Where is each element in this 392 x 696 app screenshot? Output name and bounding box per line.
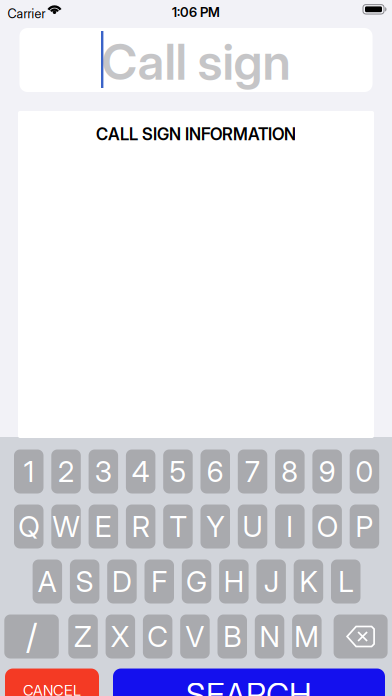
button[interactable]: R	[126, 504, 155, 548]
button[interactable]: U	[238, 504, 267, 548]
button[interactable]: T	[163, 504, 193, 548]
button[interactable]: M	[292, 614, 322, 658]
button[interactable]: 7	[238, 449, 267, 493]
staticText: J	[264, 564, 279, 599]
staticText: U	[243, 509, 263, 544]
staticText: P	[355, 509, 373, 544]
staticText: O	[317, 509, 338, 544]
button[interactable]: Y	[200, 504, 230, 548]
staticText: Y	[206, 509, 224, 544]
button[interactable]: J	[256, 559, 286, 603]
button[interactable]: CANCEL	[5, 668, 99, 696]
staticText: N	[260, 619, 280, 654]
button[interactable]: H	[219, 559, 249, 603]
staticText: G	[186, 564, 207, 599]
staticText: C	[147, 619, 168, 654]
button[interactable]: /	[4, 614, 59, 658]
staticText: 1:06 PM	[172, 4, 220, 20]
button[interactable]: V	[180, 614, 210, 658]
button[interactable]: 2	[51, 449, 81, 493]
staticText: V	[185, 619, 204, 654]
button[interactable]: I	[275, 504, 305, 548]
staticText: Z	[74, 619, 92, 654]
button[interactable]: 0	[350, 449, 379, 493]
button[interactable]: S	[70, 559, 99, 603]
button[interactable]: O	[312, 504, 342, 548]
staticText: H	[224, 564, 244, 599]
staticText: X	[111, 619, 130, 654]
staticText: I	[286, 509, 293, 544]
staticText: R	[132, 509, 150, 544]
staticText: 0	[355, 454, 373, 489]
button[interactable]: Q	[14, 504, 43, 548]
button[interactable]: 6	[200, 449, 230, 493]
staticText: 3	[95, 454, 112, 489]
button[interactable]: L	[331, 559, 360, 603]
button[interactable]: N	[255, 614, 284, 658]
button[interactable]: F	[144, 559, 174, 603]
staticText: M	[294, 619, 319, 654]
staticText: 7	[245, 454, 260, 489]
button[interactable]: 4	[126, 449, 155, 493]
staticText: 8	[281, 454, 298, 489]
staticText: L	[338, 564, 353, 599]
staticText: 5	[169, 454, 186, 489]
button[interactable]: 1	[14, 449, 43, 493]
staticText: K	[299, 564, 317, 599]
staticText: S	[76, 564, 94, 599]
staticText: CALL SIGN INFORMATION	[96, 124, 296, 144]
staticText: Q	[18, 509, 39, 544]
staticText: 4	[132, 454, 150, 489]
button[interactable]: X	[106, 614, 135, 658]
button[interactable]: K	[294, 559, 323, 603]
staticText: B	[223, 619, 241, 654]
button[interactable]: Delete	[334, 614, 388, 658]
staticText: SEARCH	[186, 675, 312, 696]
staticText: Carrier	[7, 6, 45, 21]
staticText: 6	[207, 454, 224, 489]
staticText: 2	[58, 454, 74, 489]
staticText: F	[151, 564, 167, 599]
staticText: D	[112, 564, 132, 599]
staticText: W	[52, 509, 79, 544]
button[interactable]: B	[217, 614, 247, 658]
button[interactable]: A	[33, 559, 62, 603]
staticText: E	[95, 509, 112, 544]
button[interactable]: C	[143, 614, 172, 658]
staticText: 1	[24, 454, 34, 489]
button[interactable]: G	[182, 559, 211, 603]
staticText: T	[169, 509, 186, 544]
button[interactable]: 9	[312, 449, 342, 493]
button[interactable]: 5	[163, 449, 193, 493]
button[interactable]: Z	[68, 614, 98, 658]
staticText: CANCEL	[23, 681, 81, 696]
button[interactable]: 3	[89, 449, 118, 493]
staticText: A	[38, 564, 57, 599]
button[interactable]: D	[107, 559, 137, 603]
button[interactable]: W	[51, 504, 81, 548]
button[interactable]: E	[89, 504, 118, 548]
staticText: Call sign	[101, 32, 290, 92]
button[interactable]: P	[350, 504, 379, 548]
staticText: /	[26, 615, 37, 657]
staticText: 9	[319, 454, 336, 489]
button[interactable]: 8	[275, 449, 305, 493]
button[interactable]: SEARCH	[113, 668, 385, 696]
